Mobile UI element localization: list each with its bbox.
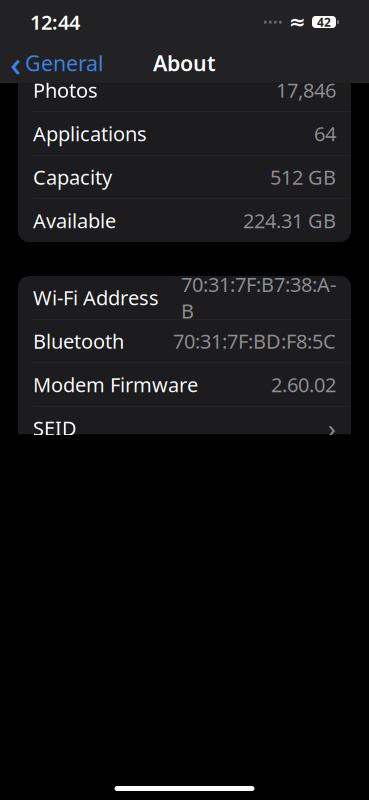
button[interactable]: Wi-Fi Address [18,276,351,319]
staticText: 70:31:7F:BD:F8:5C [173,328,336,354]
staticText: 64 [314,120,336,147]
staticText: Wi-Fi Address [33,284,159,311]
staticText: › [328,411,336,445]
staticText: Modem Firmware [33,371,198,398]
staticText: 42 [317,14,331,30]
staticText: ≈ [289,11,306,33]
staticText: Photos [33,77,98,103]
button[interactable]: ‹ [0,44,114,82]
staticText: 17,846 [276,77,336,103]
staticText: Bluetooth [33,328,124,354]
staticText: •••• [263,14,283,30]
staticText: 224.31 GB [243,207,336,234]
staticText: SEID [33,415,77,441]
staticText: Applications [33,120,147,147]
staticText: 12:44 [30,9,80,35]
staticText: General [25,49,104,77]
staticText: ‹ [10,40,21,86]
staticText: Capacity [33,164,112,190]
button[interactable]: Modem Firmware [18,363,351,406]
button[interactable]: SEID [18,406,351,449]
button[interactable]: Capacity [18,155,351,198]
button[interactable]: Bluetooth [18,319,351,362]
staticText: About [153,49,216,77]
button[interactable]: Photos [18,68,351,111]
button[interactable]: Applications [18,112,351,155]
staticText: 2.60.02 [271,371,336,398]
staticText: 512 GB [270,164,336,190]
staticText: 70:31:7F:B7:38:AB [181,271,336,324]
button[interactable]: Available [18,199,351,242]
staticText: Available [33,207,116,234]
